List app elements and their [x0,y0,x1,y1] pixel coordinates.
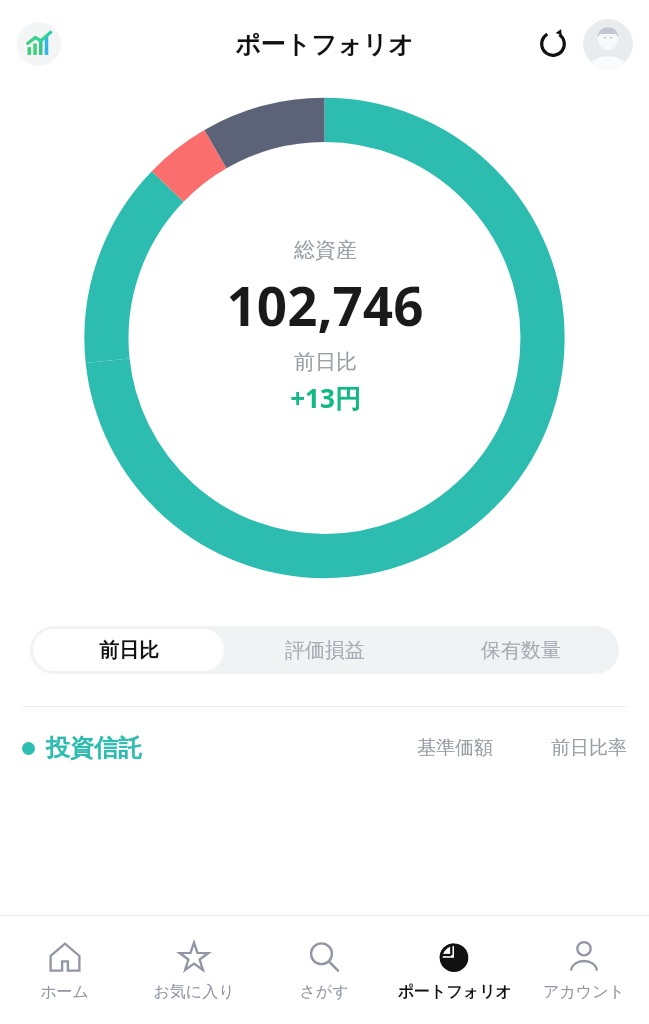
staticText: 投資信託 [46,733,142,763]
staticText: 前日比率 [551,736,627,760]
button[interactable]: 前日比 [33,629,224,671]
staticText: 前日比 [294,349,357,375]
button[interactable]: ホーム [0,916,129,1024]
button[interactable]: ポートフォリオ [389,916,519,1024]
staticText: ホーム [40,982,89,1002]
staticText: さがす [299,982,349,1002]
button[interactable]: Refresh [529,20,577,68]
button[interactable]: 評価損益 [230,629,420,671]
button[interactable]: さがす [259,916,389,1024]
staticText: ポートフォリオ [397,982,512,1002]
staticText: ポートフォリオ [235,29,414,60]
button[interactable]: Account avatar [583,19,633,69]
button[interactable]: App logo [17,22,61,66]
staticText: アカウント [543,982,625,1002]
staticText: +13円 [290,380,361,416]
staticText: 保有数量 [481,638,561,663]
staticText: 総資産 [294,237,357,263]
staticText: 基準価額 [417,736,493,760]
button[interactable]: お気に入り [129,916,259,1024]
staticText: お気に入り [153,982,235,1002]
staticText: 評価損益 [285,638,365,663]
button[interactable]: 投資信託 [22,733,627,763]
button[interactable]: アカウント [519,916,649,1024]
staticText: 102,746 [226,269,424,341]
staticText: 前日比 [99,638,159,663]
button[interactable]: 保有数量 [426,629,616,671]
